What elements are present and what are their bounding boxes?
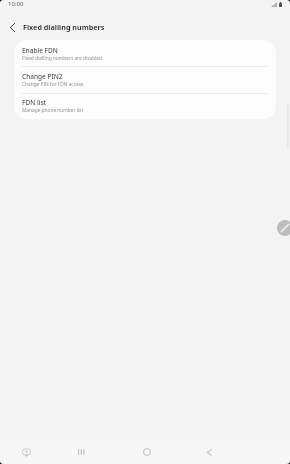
- staticText: Change PIN for FDN access: [22, 81, 84, 88]
- button[interactable]: FDN list: [14, 92, 276, 119]
- button[interactable]: Change PIN2: [14, 66, 276, 94]
- staticText: Change PIN2: [22, 72, 63, 81]
- button[interactable]: Home: [133, 440, 161, 464]
- staticText: Fixed dialling numbers: [23, 22, 105, 32]
- staticText: Enable FDN: [22, 46, 58, 55]
- staticText: 10:00: [8, 0, 24, 8]
- button[interactable]: Edit: [277, 220, 290, 236]
- staticText: Manage phone number list: [22, 107, 84, 114]
- button[interactable]: Enable FDN: [14, 40, 276, 67]
- staticText: FDN list: [22, 98, 47, 107]
- staticText: Fixed dialling numbers are disabled.: [22, 55, 104, 62]
- button[interactable]: Back: [195, 440, 223, 464]
- button[interactable]: Hide keyboard: [12, 440, 40, 464]
- button[interactable]: Navigate up: [0, 15, 24, 39]
- button[interactable]: Recent apps: [67, 440, 95, 464]
